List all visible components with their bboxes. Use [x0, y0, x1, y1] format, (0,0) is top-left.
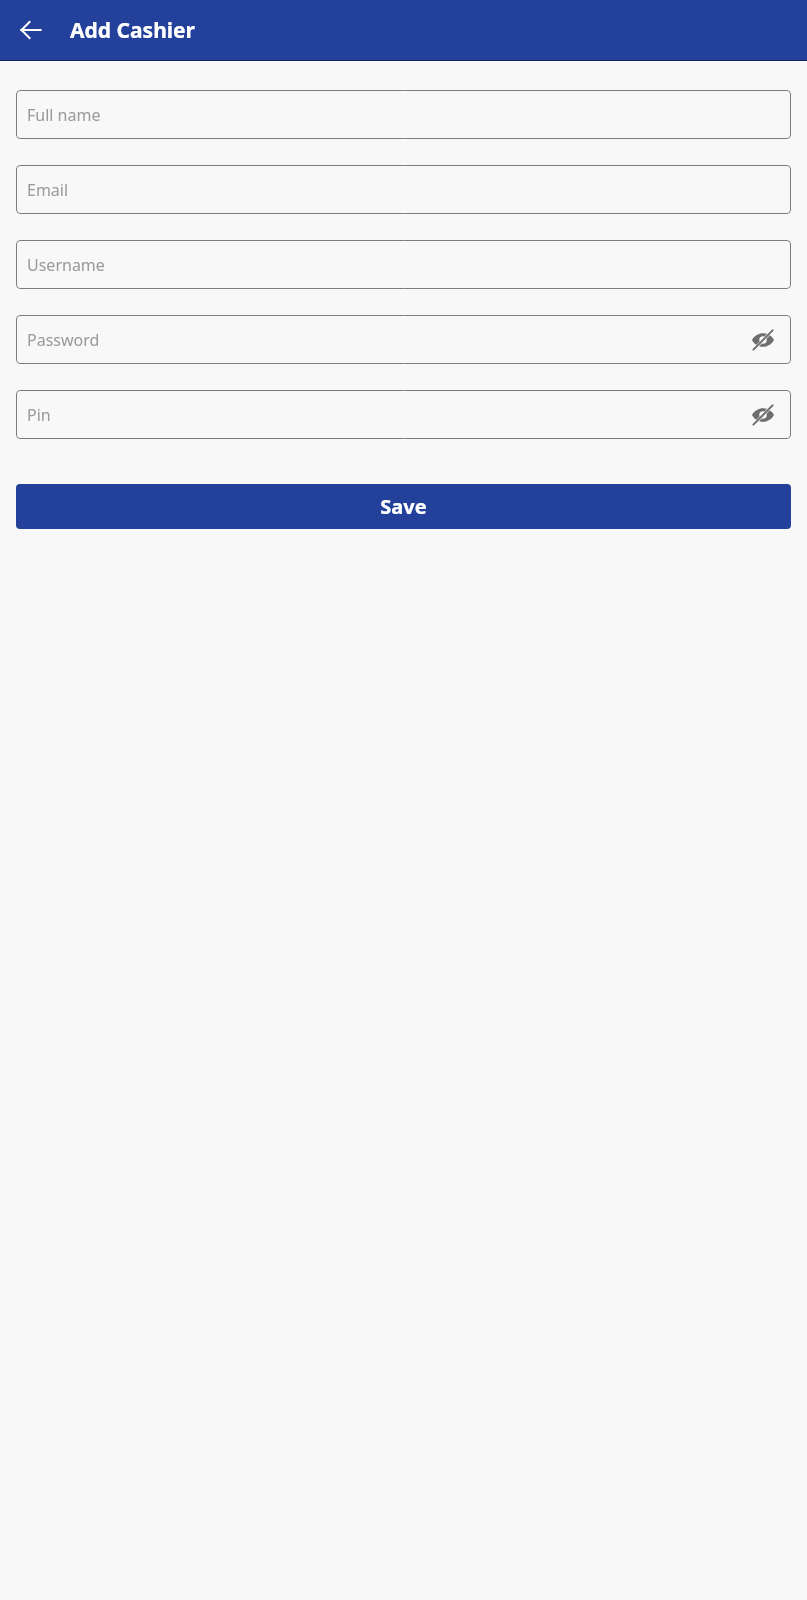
staticText: Password — [27, 329, 100, 351]
staticText: Username — [27, 254, 105, 276]
button[interactable]: Pin — [16, 390, 791, 439]
button[interactable]: Password — [16, 315, 791, 364]
staticText: Save — [380, 493, 427, 520]
button[interactable]: Toggle password visibility — [748, 400, 778, 430]
staticText: Email — [27, 179, 69, 201]
button[interactable]: Toggle password visibility — [748, 325, 778, 355]
button[interactable]: Back — [11, 10, 51, 50]
button[interactable]: Username — [16, 240, 791, 289]
staticText: Pin — [27, 404, 51, 426]
staticText: Add Cashier — [70, 16, 195, 45]
button[interactable]: Email — [16, 165, 791, 214]
staticText: Full name — [27, 104, 101, 126]
button[interactable]: Full name — [16, 90, 791, 139]
button[interactable]: Save — [16, 484, 791, 529]
